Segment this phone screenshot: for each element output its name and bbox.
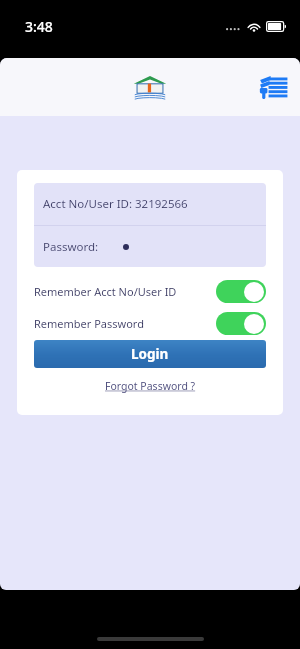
button[interactable]: Acct No/User ID: 32192566 (34, 183, 266, 225)
button[interactable]: Remember Password (34, 312, 266, 335)
staticText: Password: (43, 239, 99, 255)
staticText: Login (131, 345, 169, 363)
staticText: Remember Acct No/User ID (34, 284, 177, 299)
staticText: Acct No/User ID: 32192566 (43, 196, 188, 212)
button[interactable]: Password: (34, 226, 266, 267)
button[interactable]: Remember Acct No/User ID (34, 280, 266, 303)
button[interactable]: Forgot Password ? (103, 377, 198, 395)
button[interactable] (132, 75, 168, 101)
button[interactable]: Menu (256, 70, 290, 104)
button[interactable]: Login (34, 340, 266, 368)
staticText: 3:48 (25, 17, 53, 36)
staticText: Remember Password (34, 316, 144, 331)
